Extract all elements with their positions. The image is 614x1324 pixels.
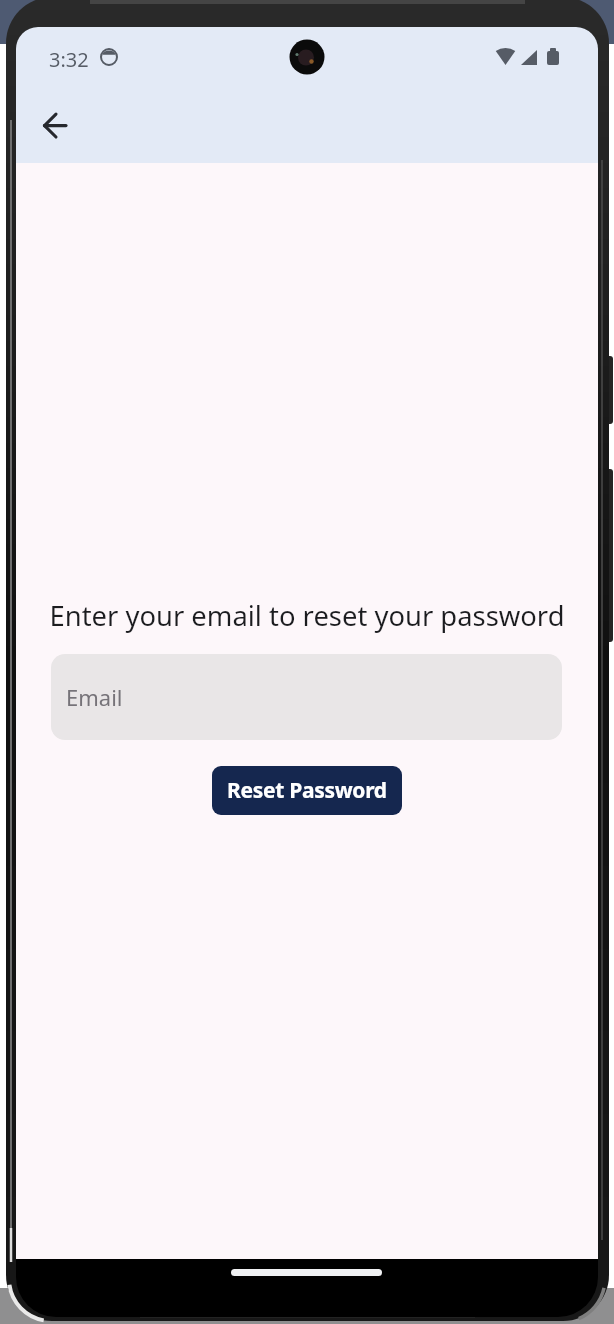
button[interactable]: Email (51, 654, 562, 740)
staticText: Reset Password (227, 776, 387, 805)
staticText: 3:32 (49, 46, 89, 73)
button[interactable]: Reset Password (212, 766, 402, 815)
button[interactable] (31, 101, 79, 149)
staticText: Email (66, 682, 123, 712)
staticText: Enter your email to reset your password (16, 597, 598, 634)
